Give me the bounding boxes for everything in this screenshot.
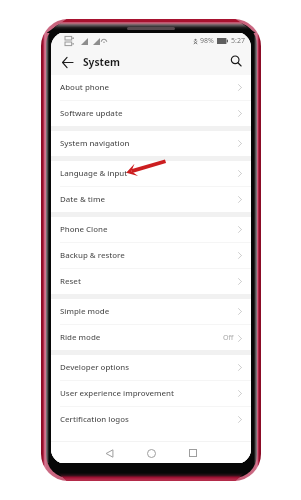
staticText: Ride mode <box>60 332 101 343</box>
button[interactable]: User experience improvement <box>51 381 251 406</box>
button[interactable]: Software update <box>51 101 251 126</box>
button[interactable]: Phone Clone <box>51 217 251 242</box>
staticText: User experience improvement <box>60 388 175 399</box>
staticText: Certification logos <box>60 414 129 425</box>
staticText: Developer options <box>60 362 130 373</box>
button[interactable]: Certification logos <box>51 407 251 432</box>
button[interactable]: Home <box>140 442 162 464</box>
button[interactable]: Backup & restore <box>51 243 251 268</box>
staticText: Language & input <box>60 168 128 179</box>
button[interactable]: Date & time <box>51 187 251 212</box>
staticText: Backup & restore <box>60 250 125 261</box>
staticText: 5:27 <box>231 36 245 46</box>
button[interactable]: Ride mode <box>51 325 251 350</box>
button[interactable]: Reset <box>51 269 251 294</box>
staticText: Reset <box>60 276 81 287</box>
button[interactable]: Recent apps <box>182 442 204 464</box>
button[interactable]: Language & input <box>51 161 251 186</box>
staticText: System <box>83 55 120 69</box>
button[interactable]: About phone <box>51 75 251 100</box>
button[interactable]: Back <box>98 442 120 464</box>
staticText: Simple mode <box>60 306 110 317</box>
button[interactable]: System navigation <box>51 131 251 156</box>
staticText: About phone <box>60 82 110 93</box>
button[interactable]: Simple mode <box>51 299 251 324</box>
staticText: 98% <box>200 36 214 46</box>
staticText: Off <box>223 333 234 343</box>
staticText: Date & time <box>60 194 105 205</box>
button[interactable]: Search <box>225 50 247 72</box>
staticText: Phone Clone <box>60 224 108 235</box>
button[interactable]: Developer options <box>51 355 251 380</box>
staticText: System navigation <box>60 138 130 149</box>
button[interactable]: Back <box>56 51 78 73</box>
staticText: Software update <box>60 108 123 119</box>
